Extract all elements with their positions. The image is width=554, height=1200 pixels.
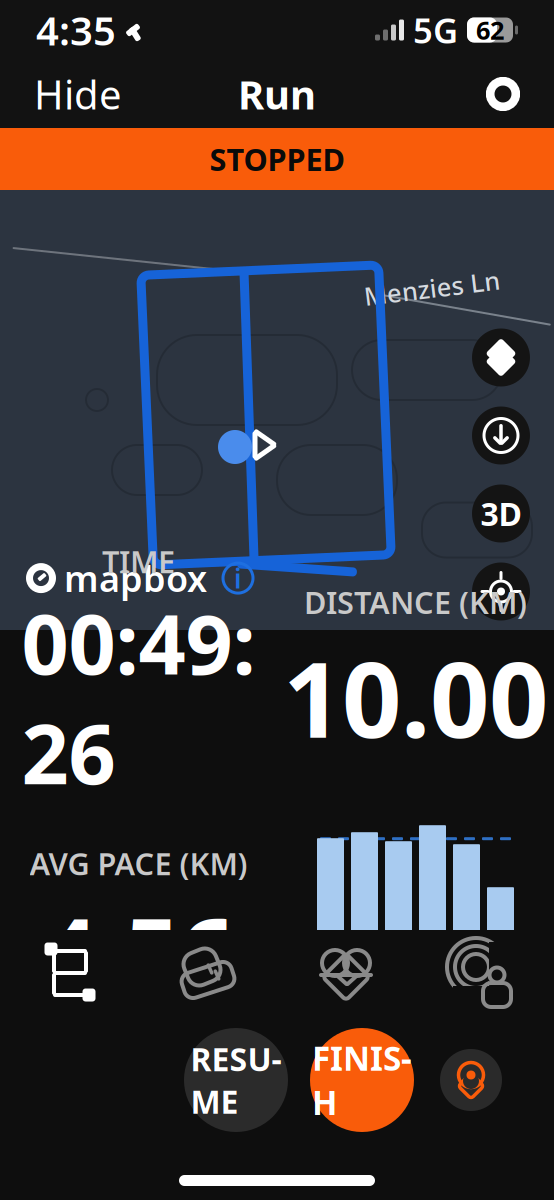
staticText: mapbox [64, 554, 207, 602]
staticText: 3D [480, 492, 521, 535]
staticText: FINISH [312, 1036, 412, 1124]
staticText: 6 [322, 975, 339, 1014]
button[interactable]: Settings [476, 67, 530, 121]
staticText: AVG PACE (KM) [29, 843, 247, 884]
staticText: RESUME [190, 1037, 281, 1122]
staticText: 10 [458, 955, 475, 1033]
button[interactable]: Sensors [415, 930, 553, 1016]
staticText: Run [238, 67, 316, 120]
button[interactable]: RESUME [184, 1028, 288, 1132]
button[interactable]: Heart rate [277, 930, 415, 1016]
button[interactable]: Map information [221, 561, 255, 595]
staticText: 00:49:26 [21, 588, 255, 807]
staticText: 62 [476, 13, 504, 47]
staticText: 10.00 [283, 628, 548, 766]
button[interactable]: FINISH [310, 1028, 414, 1132]
staticText: 7 [356, 975, 373, 1014]
button[interactable]: Shoes [139, 930, 277, 1016]
button[interactable]: Show location [440, 1049, 502, 1111]
staticText: TIME [102, 541, 175, 582]
staticText: Hide [34, 67, 122, 120]
staticText: i [234, 560, 242, 596]
staticText: Menzies Ln [363, 271, 500, 305]
staticText: 5G [413, 7, 458, 53]
staticText: 4:35 [36, 3, 116, 56]
button[interactable]: Hide [24, 55, 132, 132]
button[interactable]: 3D view [472, 484, 530, 542]
button[interactable]: Download [472, 406, 530, 464]
staticText: 4:56 [42, 888, 234, 1015]
staticText: STOPPED [209, 139, 344, 179]
button[interactable]: Route [1, 930, 139, 1016]
staticText: 11 [492, 955, 509, 1033]
button[interactable]: layers [472, 328, 530, 386]
staticText: DISTANCE (KM) [304, 582, 527, 622]
button[interactable]: Recenter [472, 562, 530, 620]
